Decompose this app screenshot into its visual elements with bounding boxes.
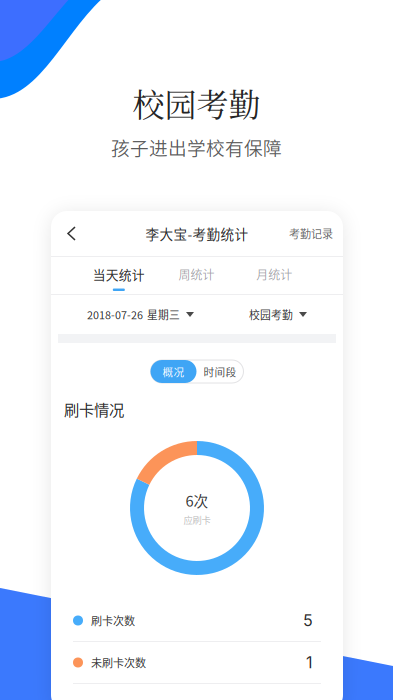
staticText: 校园考勤 — [132, 80, 260, 126]
button[interactable]: 未刷卡次数 — [51, 642, 343, 684]
staticText: 刷卡次数 — [91, 612, 135, 628]
staticText: 时间段 — [203, 364, 236, 379]
button[interactable]: 2018-07-26 星期三 — [87, 298, 194, 331]
staticText: 6次 — [185, 490, 208, 511]
button[interactable]: 概况 — [150, 360, 196, 383]
button[interactable]: 当天统计 — [80, 256, 158, 295]
staticText: 李大宝-考勤统计 — [145, 224, 248, 243]
staticText: 月统计 — [256, 266, 292, 283]
staticText: 1 — [306, 653, 313, 672]
button[interactable]: 月统计 — [235, 257, 313, 294]
staticText: 应刷卡 — [183, 513, 210, 526]
staticText: 孩子进出学校有保障 — [111, 133, 282, 160]
staticText: 校园考勤 — [249, 307, 293, 322]
staticText: 5 — [303, 611, 313, 630]
button[interactable]: 时间段 — [196, 360, 243, 383]
button[interactable]: 考勤记录 — [287, 212, 335, 254]
staticText: 考勤记录 — [289, 225, 333, 241]
button[interactable]: 校园考勤 — [249, 298, 307, 331]
button[interactable]: Back — [59, 214, 84, 253]
staticText: 周统计 — [178, 266, 214, 283]
staticText: 刷卡情况 — [64, 398, 124, 420]
staticText: 概况 — [162, 364, 184, 379]
button[interactable]: 刷卡次数 — [51, 600, 343, 642]
staticText: 2018-07-26 星期三 — [87, 307, 180, 322]
staticText: 未刷卡次数 — [91, 654, 146, 670]
button[interactable]: 周统计 — [158, 257, 235, 294]
staticText: 当天统计 — [93, 265, 145, 283]
